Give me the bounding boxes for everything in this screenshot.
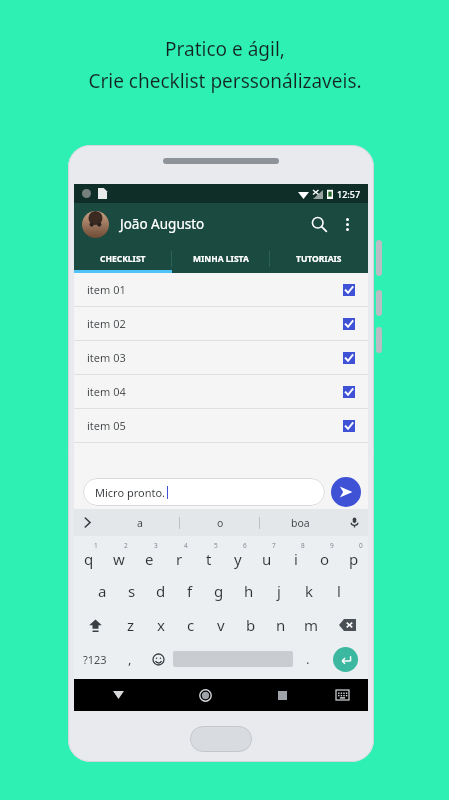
button[interactable]: v bbox=[206, 608, 236, 642]
staticText: g bbox=[214, 581, 224, 601]
button[interactable]: Switch keyboard bbox=[331, 684, 353, 706]
staticText: l bbox=[337, 581, 341, 601]
staticText: f bbox=[187, 581, 193, 601]
button[interactable]: Hide keyboard bbox=[107, 684, 129, 706]
button[interactable]: Voice input bbox=[340, 509, 368, 536]
button[interactable]: Search bbox=[304, 209, 334, 239]
button[interactable]: . bbox=[293, 642, 322, 676]
button[interactable]: 6 bbox=[223, 540, 252, 574]
button[interactable]: Expand toolbar bbox=[74, 509, 100, 536]
button[interactable]: j bbox=[264, 574, 294, 608]
staticText: . bbox=[306, 650, 310, 668]
staticText: 1 bbox=[94, 541, 98, 550]
button[interactable]: 9 bbox=[310, 540, 339, 574]
staticText: x bbox=[157, 615, 165, 635]
button[interactable]: , bbox=[116, 642, 144, 676]
button[interactable]: o bbox=[180, 509, 260, 536]
staticText: k bbox=[305, 581, 314, 601]
staticText: ?123 bbox=[83, 652, 107, 667]
staticText: z bbox=[127, 615, 135, 635]
button[interactable]: boa bbox=[260, 509, 340, 536]
button[interactable]: x bbox=[146, 608, 176, 642]
button[interactable]: item 01 bbox=[74, 273, 368, 306]
staticText: a bbox=[137, 516, 143, 530]
staticText: n bbox=[276, 615, 286, 635]
staticText: boa bbox=[291, 516, 310, 530]
staticText: item 04 bbox=[87, 384, 126, 399]
button[interactable]: TUTORIAIS bbox=[270, 245, 368, 273]
staticText: João Augusto bbox=[120, 215, 205, 233]
button[interactable]: item 05 bbox=[74, 409, 368, 442]
button[interactable]: a bbox=[88, 574, 117, 608]
staticText: , bbox=[128, 650, 132, 668]
staticText: a bbox=[98, 581, 107, 601]
button[interactable]: 1 bbox=[74, 540, 104, 574]
staticText: w bbox=[113, 549, 125, 569]
staticText: d bbox=[156, 581, 166, 601]
staticText: Crie checklist perssonálizaveis. bbox=[88, 68, 362, 94]
staticText: 6 bbox=[243, 541, 247, 550]
staticText: item 05 bbox=[87, 418, 126, 433]
button[interactable]: ?123 bbox=[74, 642, 116, 676]
button[interactable]: g bbox=[204, 574, 234, 608]
button[interactable]: Emoji bbox=[144, 642, 173, 676]
staticText: 7 bbox=[272, 541, 276, 550]
staticText: 5 bbox=[214, 541, 218, 550]
button[interactable]: Recents bbox=[271, 684, 293, 706]
button[interactable]: d bbox=[146, 574, 175, 608]
button[interactable]: a bbox=[100, 509, 180, 536]
button[interactable]: Micro pronto. bbox=[83, 478, 325, 506]
staticText: c bbox=[187, 615, 195, 635]
button[interactable]: f bbox=[175, 574, 204, 608]
staticText: item 03 bbox=[87, 350, 126, 365]
staticText: i bbox=[294, 549, 298, 569]
staticText: p bbox=[349, 549, 359, 569]
button[interactable]: 0 bbox=[339, 540, 368, 574]
staticText: v bbox=[217, 615, 225, 635]
staticText: e bbox=[145, 549, 154, 569]
button[interactable]: c bbox=[176, 608, 206, 642]
staticText: CHECKLIST bbox=[100, 253, 146, 265]
staticText: Micro pronto. bbox=[95, 485, 166, 500]
button[interactable]: 3 bbox=[134, 540, 164, 574]
staticText: u bbox=[262, 549, 272, 569]
button[interactable]: 7 bbox=[252, 540, 281, 574]
staticText: b bbox=[246, 615, 256, 635]
staticText: Pratico e ágil, bbox=[165, 36, 285, 62]
staticText: 9 bbox=[330, 541, 334, 550]
button[interactable]: 4 bbox=[164, 540, 194, 574]
button[interactable]: Enter bbox=[333, 647, 358, 672]
staticText: 0 bbox=[359, 541, 363, 550]
button[interactable]: b bbox=[236, 608, 266, 642]
staticText: j bbox=[277, 581, 281, 601]
staticText: TUTORIAIS bbox=[296, 253, 342, 265]
button[interactable]: item 02 bbox=[74, 307, 368, 340]
button[interactable]: m bbox=[296, 608, 326, 642]
staticText: h bbox=[244, 581, 254, 601]
button[interactable]: Backspace bbox=[326, 608, 368, 642]
staticText: s bbox=[128, 581, 136, 601]
button[interactable]: l bbox=[324, 574, 354, 608]
button[interactable]: 2 bbox=[104, 540, 134, 574]
button[interactable]: z bbox=[116, 608, 146, 642]
button[interactable]: h bbox=[234, 574, 264, 608]
button[interactable]: Profile bbox=[82, 211, 109, 238]
button[interactable]: 8 bbox=[281, 540, 310, 574]
staticText: item 01 bbox=[87, 282, 126, 297]
button[interactable]: More options bbox=[334, 211, 360, 237]
button[interactable]: Shift bbox=[74, 608, 116, 642]
staticText: t bbox=[206, 549, 212, 569]
button[interactable]: s bbox=[117, 574, 146, 608]
button[interactable]: n bbox=[266, 608, 296, 642]
staticText: o bbox=[217, 516, 224, 530]
staticText: 8 bbox=[301, 541, 305, 550]
button[interactable]: item 04 bbox=[74, 375, 368, 408]
button[interactable]: item 03 bbox=[74, 341, 368, 374]
button[interactable]: Send bbox=[331, 477, 361, 507]
button[interactable]: Home bbox=[193, 683, 217, 707]
button[interactable]: CHECKLIST bbox=[74, 245, 172, 273]
button[interactable]: k bbox=[294, 574, 324, 608]
button[interactable]: MINHA LISTA bbox=[172, 245, 270, 273]
button[interactable]: 5 bbox=[194, 540, 223, 574]
